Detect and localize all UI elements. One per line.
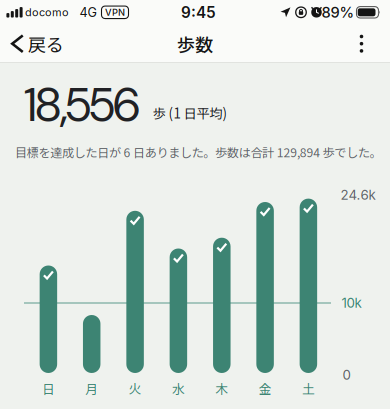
- staticText: docomo: [25, 6, 69, 19]
- staticText: 金: [259, 379, 272, 398]
- staticText: 月: [85, 379, 98, 398]
- staticText: 0: [342, 367, 350, 383]
- staticText: 10k: [341, 295, 361, 311]
- staticText: 木: [215, 379, 228, 398]
- staticText: VPN: [105, 7, 125, 18]
- staticText: 89%: [321, 3, 354, 21]
- staticText: 歩数: [177, 31, 213, 57]
- staticText: 日: [42, 379, 55, 398]
- staticText: 土: [302, 379, 315, 398]
- staticText: 18,556: [24, 74, 140, 136]
- staticText: 戻る: [28, 31, 64, 57]
- button[interactable]: その他のオプション: [346, 25, 376, 63]
- staticText: 火: [129, 379, 142, 398]
- staticText: 目標を達成した日が 6 日ありました。歩数は合計 129,894 歩でした。: [15, 143, 382, 161]
- button[interactable]: 戻る: [12, 31, 64, 57]
- staticText: 24.6k: [340, 187, 375, 203]
- staticText: 9:45: [181, 3, 216, 22]
- staticText: 歩 (1 日平均): [152, 103, 227, 122]
- staticText: 水: [172, 379, 185, 398]
- staticText: 4G: [79, 5, 96, 20]
